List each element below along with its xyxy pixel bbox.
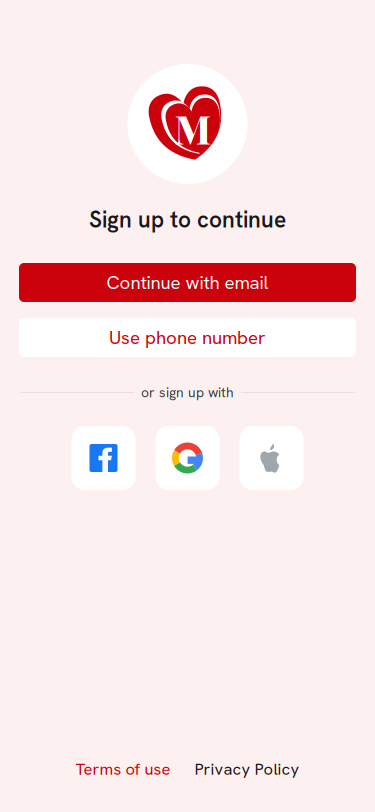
- staticText: Privacy Policy: [194, 758, 299, 780]
- button[interactable]: Sign up with Google: [155, 426, 219, 490]
- button[interactable]: Continue with email: [19, 263, 356, 302]
- staticText: Terms of use: [75, 758, 170, 780]
- staticText: M: [174, 103, 211, 154]
- staticText: Continue with email: [106, 270, 268, 295]
- staticText: Use phone number: [109, 325, 266, 350]
- button[interactable]: Privacy Policy: [194, 758, 299, 780]
- button[interactable]: Sign up with Apple: [239, 426, 303, 490]
- button[interactable]: Sign up with Facebook: [71, 426, 135, 490]
- button[interactable]: Use phone number: [19, 318, 356, 357]
- button[interactable]: Terms of use: [75, 758, 170, 780]
- staticText: or sign up with: [141, 383, 234, 402]
- staticText: Sign up to continue: [89, 205, 286, 234]
